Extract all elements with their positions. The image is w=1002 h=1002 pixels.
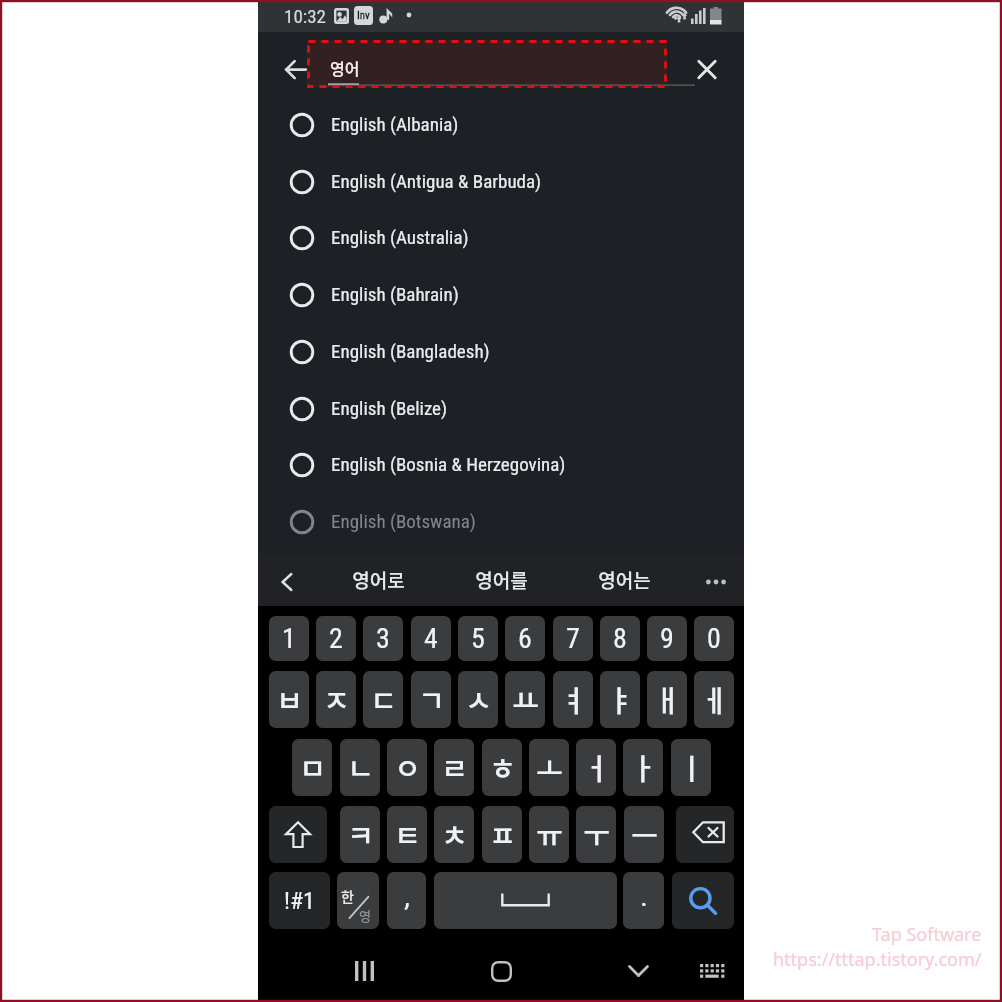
staticText: 7 [566,622,580,655]
staticText: English (Bahrain) [331,283,459,305]
button[interactable]: More options [694,554,738,606]
button[interactable]: ㅁ [292,739,332,796]
button[interactable]: !#1 [269,872,330,929]
button[interactable]: 5 [458,616,498,661]
button[interactable]: 4 [411,616,451,661]
staticText: English (Bangladesh) [331,340,490,362]
button[interactable]: ㄷ [363,671,403,728]
button[interactable]: ㅠ [529,806,569,863]
button[interactable]: Previous suggestions [261,554,313,606]
button[interactable]: English (Bosnia & Herzegovina) [258,436,744,492]
button[interactable]: English (Botswana) [258,493,744,549]
button[interactable]: 2 [316,616,356,661]
button[interactable]: ㄹ [434,739,474,796]
staticText: 6 [518,622,532,655]
button[interactable]: ㅑ [600,671,640,728]
button[interactable]: ㅛ [505,671,545,728]
button[interactable]: Hide keyboard [612,940,664,1002]
button[interactable]: ㅕ [553,671,593,728]
staticText: 영어는 [598,566,651,594]
staticText: English (Botswana) [331,510,476,532]
button[interactable]: Space [434,872,617,929]
staticText: 0 [707,622,721,655]
button[interactable]: ㅇ [387,739,427,796]
staticText: !#1 [284,887,315,915]
staticText: 영어를 [475,566,528,594]
button[interactable]: Search [672,872,734,929]
button[interactable]: 6 [505,616,545,661]
staticText: 한 [341,886,354,906]
button[interactable]: ㅔ [694,671,734,728]
button[interactable]: Shift [269,806,327,863]
button[interactable]: 영어를 [445,554,557,606]
button[interactable]: ㅓ [576,739,616,796]
staticText: Inv [357,9,370,22]
button[interactable]: ㅎ [482,739,522,796]
button[interactable]: 영어로 [322,554,434,606]
button[interactable]: 3 [363,616,403,661]
staticText: English (Albania) [331,113,459,135]
button[interactable]: ㅌ [387,806,427,863]
staticText: ㅂ [276,678,303,720]
button[interactable]: Recents [338,940,390,1002]
button[interactable]: ㅜ [576,806,616,863]
button[interactable]: Clear [685,45,729,89]
button[interactable]: 영어는 [568,554,680,606]
staticText: ㅡ [631,813,658,855]
staticText: ㅓ [583,746,610,788]
staticText: ㄴ [347,746,374,788]
staticText: ㄹ [441,746,468,788]
button[interactable]: . [623,872,664,929]
button[interactable]: 7 [553,616,593,661]
button[interactable]: Language switch [337,872,379,929]
staticText: ㅍ [489,813,516,855]
staticText: 2 [329,622,343,655]
button[interactable]: ㅏ [623,739,663,796]
button[interactable]: ㅅ [458,671,498,728]
button[interactable]: , [387,872,426,929]
staticText: ㅊ [441,813,468,855]
button[interactable]: ㄴ [340,739,380,796]
staticText: ㅏ [630,746,657,788]
staticText: ㅣ [678,746,705,788]
button[interactable]: ㅈ [316,671,356,728]
button[interactable]: ㅗ [529,739,569,796]
button[interactable]: ㅡ [624,806,664,863]
staticText: 4 [424,622,438,655]
staticText: ㅈ [323,678,350,720]
staticText: 10:32 [284,5,326,27]
button[interactable]: English (Bangladesh) [258,323,744,379]
button[interactable]: 9 [647,616,687,661]
staticText: 1 [282,622,296,655]
staticText: 영 [359,906,371,925]
staticText: ㅕ [560,678,587,720]
button[interactable]: English (Belize) [258,380,744,436]
staticText: ㅗ [536,746,563,788]
button[interactable]: Backspace [676,806,734,863]
button[interactable]: English (Antigua & Barbuda) [258,153,744,209]
button[interactable]: English (Bahrain) [258,266,744,322]
staticText: . [640,880,648,913]
staticText: 3 [376,622,390,655]
button[interactable]: ㅐ [647,671,687,728]
button[interactable]: ㅍ [482,806,522,863]
button[interactable]: Back [274,45,318,89]
button[interactable]: Home [475,940,527,1002]
button[interactable]: Keyboard [686,940,738,1002]
button[interactable]: ㄱ [411,671,451,728]
button[interactable]: English (Australia) [258,209,744,265]
button[interactable]: 1 [269,616,309,661]
staticText: ㅅ [465,678,492,720]
button[interactable]: 8 [600,616,640,661]
staticText: ㄷ [370,678,397,720]
button[interactable]: English (Albania) [258,96,744,152]
button[interactable]: ㅂ [269,671,309,728]
button[interactable]: ㅊ [434,806,474,863]
staticText: , [404,880,410,913]
staticText: ㅎ [489,746,516,788]
staticText: 5 [471,622,485,655]
button[interactable]: 0 [694,616,734,661]
button[interactable]: ㅣ [671,739,711,796]
button[interactable]: ㅋ [340,806,380,863]
button[interactable]: 영어 [307,40,697,88]
